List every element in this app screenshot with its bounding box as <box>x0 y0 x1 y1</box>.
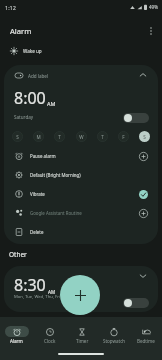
button[interactable]: F <box>118 131 129 142</box>
staticText: T <box>58 134 61 140</box>
staticText: Vibrate <box>30 191 45 197</box>
staticText: Google Assistant Routine <box>30 210 82 216</box>
staticText: Stopwatch <box>103 338 126 344</box>
button[interactable]: M <box>33 131 44 142</box>
staticText: Default (Bright Morning) <box>30 172 81 178</box>
button[interactable]: Toggle alarm <box>123 113 149 123</box>
staticText: AM <box>47 100 56 107</box>
button[interactable]: Add alarm <box>60 275 100 315</box>
staticText: 49% <box>149 4 158 10</box>
staticText: 8:00 <box>14 87 46 109</box>
button[interactable]: W <box>76 131 87 142</box>
staticText: Mon, Tue, Wed, Thu, Fri <box>14 294 61 300</box>
staticText: Pause alarm <box>30 153 56 159</box>
button[interactable]: Delete <box>4 223 158 241</box>
button[interactable]: Vibrate <box>4 185 158 203</box>
staticText: Other <box>9 250 27 259</box>
button[interactable]: Clock <box>33 326 66 344</box>
staticText: Saturday <box>14 114 34 120</box>
staticText: F <box>122 134 125 140</box>
button[interactable]: Expand alarm <box>134 267 151 284</box>
staticText: S <box>143 134 146 140</box>
staticText: T <box>101 134 104 140</box>
staticText: 1:12 <box>5 4 16 11</box>
staticText: Wake up <box>23 48 42 54</box>
button[interactable]: More options <box>142 22 160 40</box>
button[interactable]: Bedtime <box>130 326 162 344</box>
staticText: Bedtime <box>137 338 155 344</box>
staticText: Delete <box>30 229 44 235</box>
button[interactable]: Collapse alarm <box>134 66 151 83</box>
staticText: S <box>16 134 19 140</box>
button[interactable]: Default (Bright Morning) <box>4 166 158 184</box>
button[interactable]: T <box>54 131 65 142</box>
staticText: M <box>36 134 41 140</box>
staticText: Alarm <box>10 26 32 36</box>
staticText: Add label <box>28 73 49 79</box>
button[interactable]: Timer <box>66 326 98 344</box>
button[interactable]: Alarm <box>0 326 33 344</box>
staticText: W <box>79 134 84 140</box>
button[interactable]: Pause alarm <box>4 147 158 165</box>
button[interactable]: S <box>12 131 23 142</box>
staticText: Alarm <box>10 338 23 344</box>
button[interactable]: S <box>139 131 150 142</box>
staticText: Timer <box>76 338 89 344</box>
staticText: AM <box>48 289 56 295</box>
button[interactable]: T <box>97 131 108 142</box>
button[interactable]: Stopwatch <box>98 326 130 344</box>
button[interactable]: Google Assistant Routine <box>4 204 158 222</box>
button[interactable]: Toggle alarm 8:30 <box>123 298 149 308</box>
staticText: Clock <box>44 338 56 344</box>
staticText: 8:30 <box>14 274 46 296</box>
